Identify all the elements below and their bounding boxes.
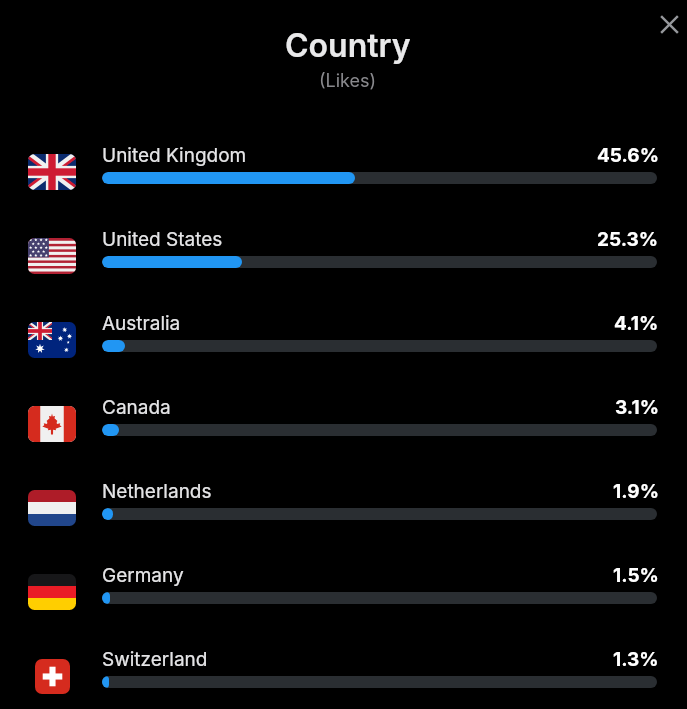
button[interactable]: United Kingdom bbox=[0, 144, 687, 212]
button[interactable]: Canada bbox=[0, 396, 687, 464]
button[interactable]: Switzerland bbox=[0, 648, 687, 709]
staticText: 4.1% bbox=[614, 312, 659, 335]
staticText: 1.5% bbox=[613, 564, 659, 587]
button[interactable]: Netherlands bbox=[0, 480, 687, 548]
staticText: United Kingdom bbox=[102, 144, 247, 167]
button[interactable]: Close bbox=[649, 4, 687, 44]
button[interactable]: United States bbox=[0, 228, 687, 296]
staticText: 45.6% bbox=[597, 144, 659, 167]
staticText: 25.3% bbox=[597, 228, 659, 251]
staticText: Australia bbox=[102, 312, 181, 335]
staticText: United States bbox=[102, 228, 223, 251]
staticText: Netherlands bbox=[102, 480, 212, 503]
staticText: Canada bbox=[102, 396, 171, 419]
staticText: Germany bbox=[102, 564, 184, 587]
staticText: Country bbox=[285, 26, 411, 65]
staticText: Switzerland bbox=[102, 648, 208, 671]
staticText: 1.3% bbox=[613, 648, 659, 671]
staticText: (Likes) bbox=[319, 70, 377, 92]
button[interactable]: Germany bbox=[0, 564, 687, 632]
staticText: 1.9% bbox=[613, 480, 659, 503]
staticText: 3.1% bbox=[615, 396, 659, 419]
button[interactable]: Australia bbox=[0, 312, 687, 380]
